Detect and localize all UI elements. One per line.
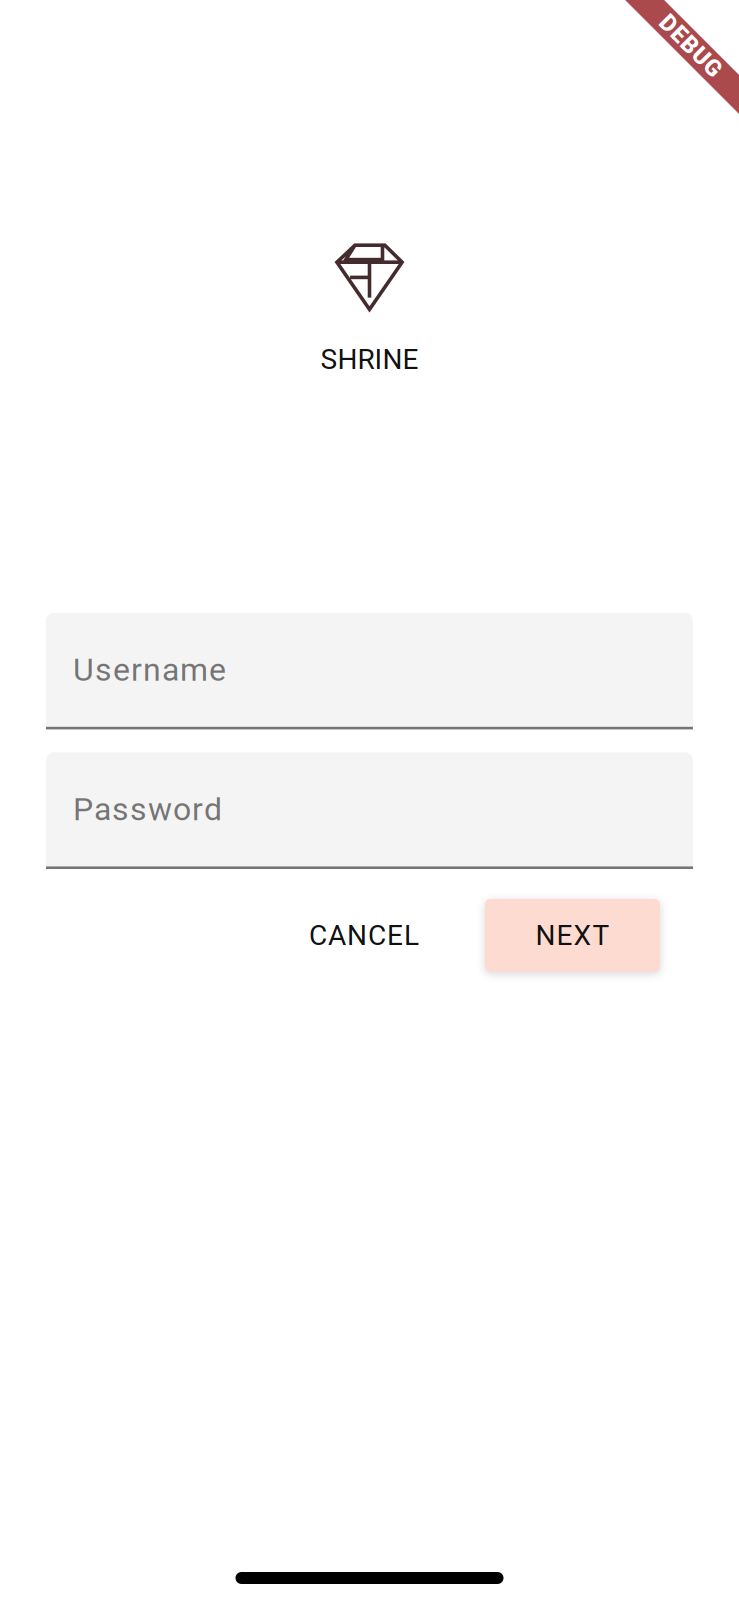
button[interactable]: NEXT [485, 899, 660, 972]
staticText: CANCEL [309, 919, 419, 952]
button[interactable]: CANCEL [281, 899, 447, 971]
staticText: DEBUG [652, 32, 729, 59]
staticText: Password [73, 791, 222, 828]
staticText: Username [73, 651, 226, 689]
staticText: SHRINE [320, 343, 418, 376]
staticText: NEXT [535, 919, 609, 952]
